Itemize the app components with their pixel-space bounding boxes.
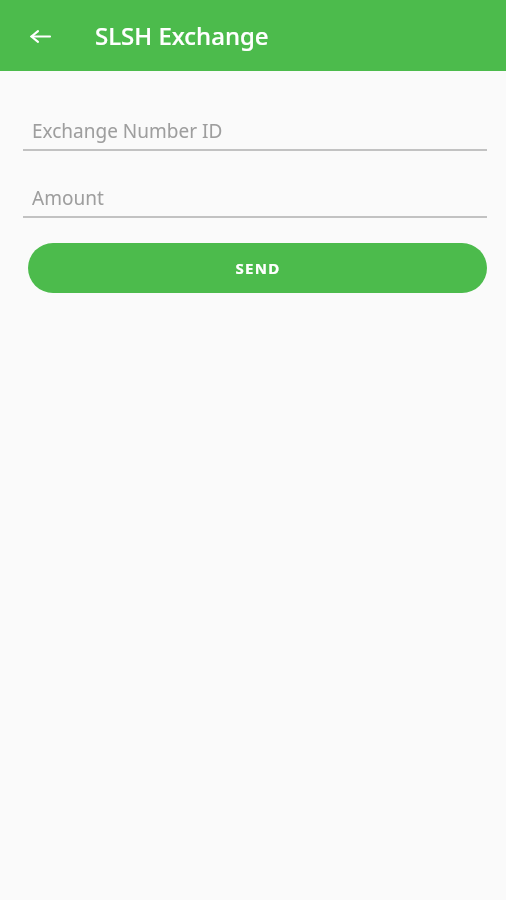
staticText: SLSH Exchange	[95, 19, 269, 52]
staticText: Amount	[32, 185, 104, 211]
staticText: SEND	[235, 258, 281, 278]
button[interactable]: Exchange Number ID	[23, 112, 487, 151]
button[interactable]: Amount	[23, 179, 487, 218]
button[interactable]: SEND	[28, 243, 487, 293]
button[interactable]: Back	[21, 17, 59, 55]
staticText: Exchange Number ID	[32, 118, 223, 144]
